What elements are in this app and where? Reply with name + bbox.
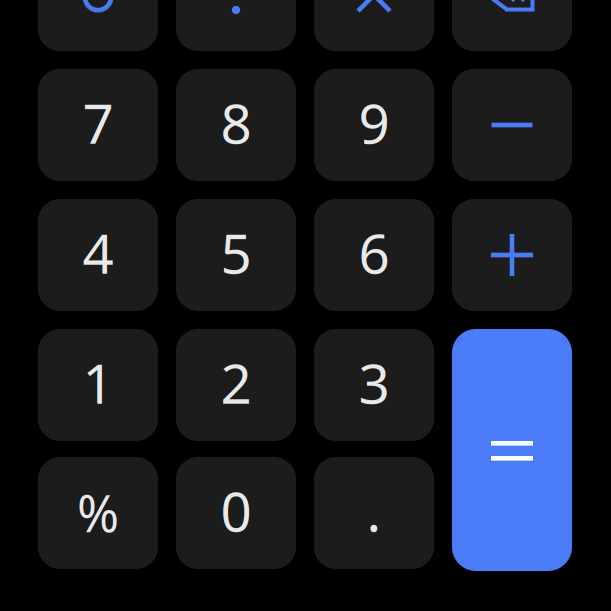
staticText: 5	[220, 216, 251, 289]
staticText: 9	[358, 86, 389, 159]
button[interactable]: 7	[38, 69, 158, 181]
button[interactable]: Equals	[452, 329, 572, 571]
button[interactable]: %	[38, 457, 158, 569]
button[interactable]: Minus	[452, 69, 572, 181]
button[interactable]: Divide	[176, 0, 296, 51]
button[interactable]: 5	[176, 199, 296, 311]
button[interactable]: Plus	[452, 199, 572, 311]
button[interactable]: 3	[314, 329, 434, 441]
staticText: 1	[82, 346, 113, 419]
button[interactable]: 8	[176, 69, 296, 181]
button[interactable]: Multiply	[314, 0, 434, 51]
staticText: 3	[358, 346, 389, 419]
button[interactable]: 6	[314, 199, 434, 311]
button[interactable]: Delete	[452, 0, 572, 51]
staticText: %	[77, 479, 119, 546]
staticText: 7	[82, 86, 113, 159]
button[interactable]: .	[314, 457, 434, 569]
staticText: 6	[358, 216, 389, 289]
button[interactable]: 2	[176, 329, 296, 441]
button[interactable]: 9	[314, 69, 434, 181]
staticText: 0	[220, 474, 251, 547]
button[interactable]: 0	[176, 457, 296, 569]
button[interactable]: 1	[38, 329, 158, 441]
button[interactable]: 4	[38, 199, 158, 311]
button[interactable]: Clear	[38, 0, 158, 51]
staticText: 8	[220, 86, 251, 159]
staticText: 4	[82, 216, 113, 289]
staticText: .	[366, 474, 381, 547]
staticText: 2	[220, 346, 251, 419]
